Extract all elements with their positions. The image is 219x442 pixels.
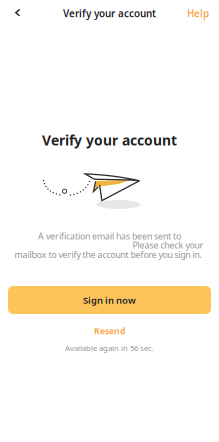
staticText: Help	[187, 7, 209, 20]
staticText: Sign in now	[83, 294, 136, 306]
staticText: Available again in 56 sec.	[65, 343, 154, 353]
button[interactable]: Back	[3, 0, 33, 24]
staticText: Please check your	[132, 239, 203, 251]
staticText: Verify your account	[63, 7, 156, 20]
button[interactable]: Sign in now	[8, 286, 211, 314]
staticText: Verify your account	[42, 131, 177, 149]
staticText: A verification email has been sent to	[38, 230, 181, 242]
staticText: mailbox to verify the account before you…	[14, 248, 201, 260]
staticText: Resend	[94, 325, 125, 337]
button[interactable]: Help	[183, 1, 213, 25]
button[interactable]: Resend	[79, 324, 139, 338]
